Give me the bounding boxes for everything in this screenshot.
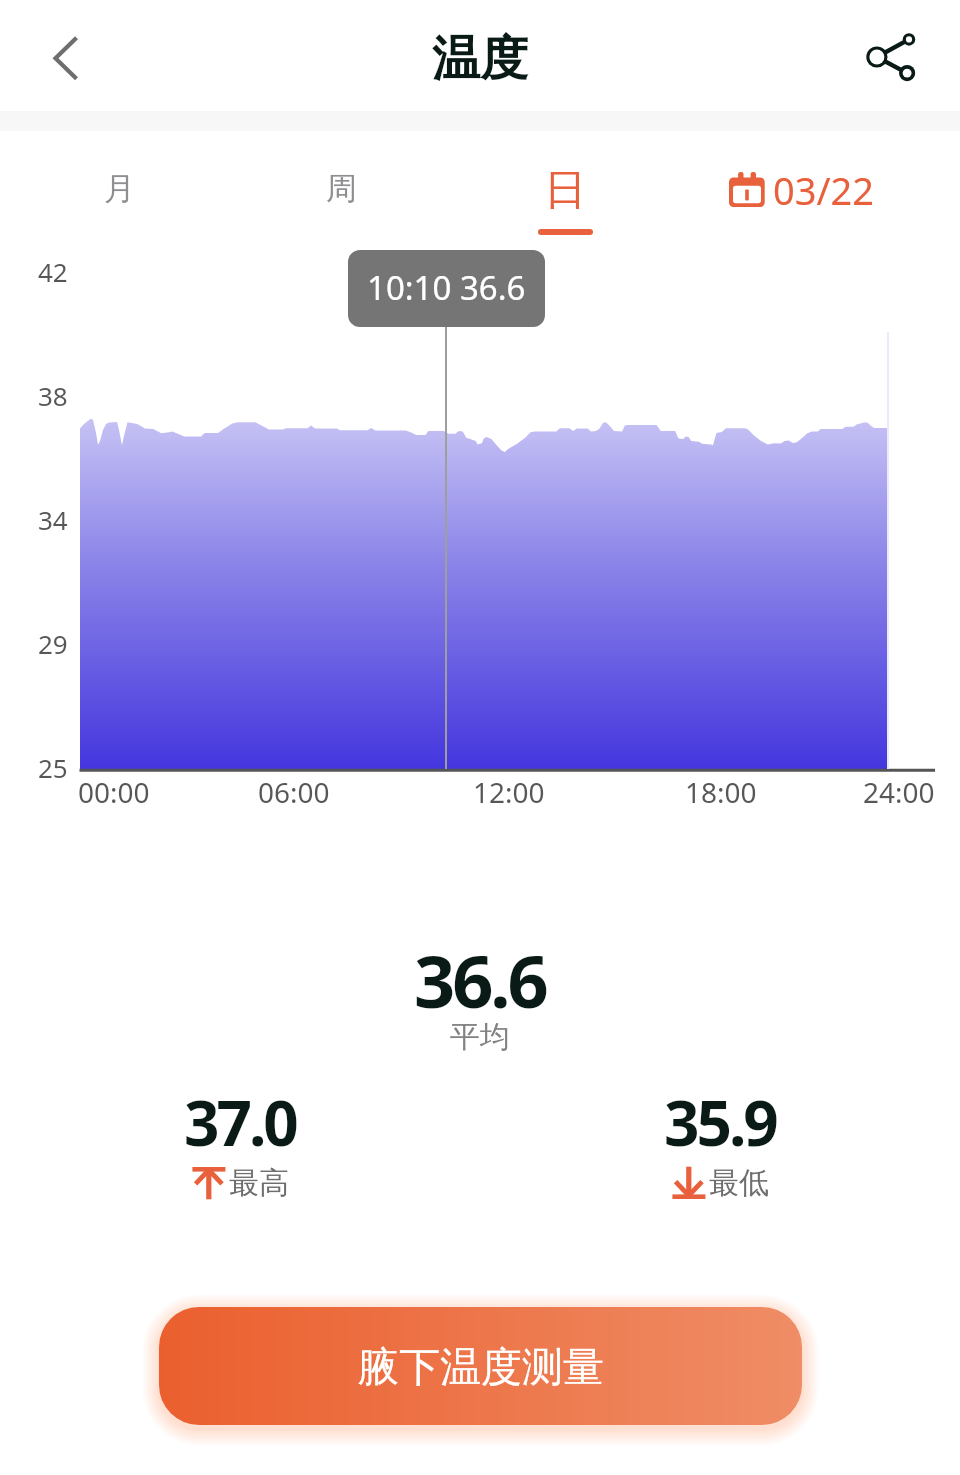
staticText: 25 bbox=[38, 750, 68, 785]
button[interactable]: 03/22 bbox=[724, 162, 875, 218]
staticText: 00:00 bbox=[78, 773, 150, 809]
staticText: 最高 bbox=[229, 1164, 289, 1202]
button[interactable]: Back bbox=[21, 22, 89, 90]
staticText: 平均 bbox=[450, 1018, 510, 1056]
staticText: 38 bbox=[38, 378, 68, 413]
staticText: 03/22 bbox=[773, 164, 875, 216]
staticText: 18:00 bbox=[685, 773, 757, 809]
staticText: 06:00 bbox=[258, 773, 330, 809]
staticText: 42 bbox=[38, 254, 68, 289]
staticText: 最低 bbox=[709, 1164, 769, 1202]
button[interactable]: 日 bbox=[515, 158, 615, 240]
button[interactable]: Share bbox=[855, 20, 923, 88]
staticText: 29 bbox=[38, 626, 68, 661]
button[interactable]: 腋下温度测量 bbox=[159, 1307, 802, 1425]
staticText: 日 bbox=[544, 164, 586, 217]
staticText: 34 bbox=[38, 502, 68, 537]
staticText: 10:10 36.6 bbox=[367, 265, 526, 310]
staticText: 月 bbox=[104, 169, 135, 208]
button[interactable]: 月 bbox=[69, 158, 169, 240]
staticText: 35.9 bbox=[664, 1080, 776, 1164]
staticText: 12:00 bbox=[473, 773, 545, 809]
staticText: 温度 bbox=[432, 29, 528, 89]
staticText: 24:00 bbox=[863, 773, 935, 809]
button[interactable]: 周 bbox=[291, 158, 391, 240]
staticText: 周 bbox=[326, 169, 357, 208]
staticText: 腋下温度测量 bbox=[358, 1342, 604, 1394]
staticText: 37.0 bbox=[184, 1080, 296, 1164]
staticText: 36.6 bbox=[414, 931, 546, 1029]
